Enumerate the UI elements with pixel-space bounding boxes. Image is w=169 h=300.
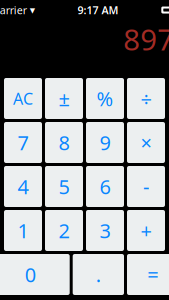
button[interactable]: -	[127, 166, 165, 207]
staticText: -	[143, 173, 149, 200]
staticText: 4	[17, 173, 28, 200]
button[interactable]: ÷	[127, 78, 165, 119]
button[interactable]: 7	[4, 122, 42, 163]
button[interactable]: %	[86, 78, 124, 119]
button[interactable]: 9	[86, 122, 124, 163]
staticText: 897	[123, 19, 169, 58]
staticText: AC	[13, 88, 33, 109]
staticText: 9:17 AM	[77, 3, 118, 17]
staticText: 7	[17, 129, 28, 156]
staticText	[27, 3, 30, 17]
staticText: .	[96, 261, 101, 288]
button[interactable]: 6	[86, 166, 124, 207]
staticText: =	[147, 261, 158, 288]
button[interactable]: =	[127, 254, 169, 295]
staticText: 3	[99, 217, 110, 244]
button[interactable]: 8	[45, 122, 83, 163]
staticText: ±	[58, 85, 69, 112]
button[interactable]: +	[127, 210, 165, 251]
button[interactable]: ±	[45, 78, 83, 119]
staticText: ×	[140, 129, 151, 156]
button[interactable]: .	[73, 254, 124, 295]
button[interactable]: 0	[0, 254, 70, 295]
staticText: 0	[25, 261, 36, 288]
staticText: 2	[58, 217, 69, 244]
button[interactable]: AC	[4, 78, 42, 119]
button[interactable]: ×	[127, 122, 165, 163]
button[interactable]: 1	[4, 210, 42, 251]
staticText: 9	[99, 129, 110, 156]
button[interactable]: 2	[45, 210, 83, 251]
button[interactable]: 3	[86, 210, 124, 251]
staticText: ▾	[30, 4, 35, 16]
button[interactable]: 5	[45, 166, 83, 207]
staticText: 6	[99, 173, 110, 200]
staticText: 5	[58, 173, 69, 200]
staticText: ÷	[140, 85, 151, 112]
staticText: %	[96, 85, 113, 112]
staticText: +	[140, 217, 151, 244]
button[interactable]: 4	[4, 166, 42, 207]
staticText: Carrier	[0, 3, 27, 17]
staticText: 1	[17, 217, 28, 244]
staticText: 8	[58, 129, 69, 156]
